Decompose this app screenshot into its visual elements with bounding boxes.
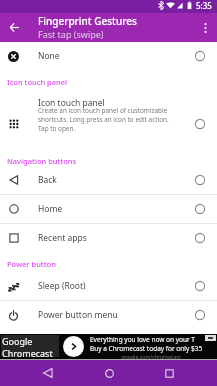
staticText: Home xyxy=(38,203,63,215)
button[interactable]: Recent apps xyxy=(0,224,217,252)
button[interactable]: Icon touch panel xyxy=(0,96,217,152)
button[interactable]: Sleep (Root) xyxy=(0,272,217,300)
button[interactable]: More options xyxy=(193,13,217,42)
staticText: Fingerprint Gestures xyxy=(38,14,137,28)
staticText: Back xyxy=(38,174,57,186)
staticText: Fast tap (swipe) xyxy=(38,28,104,40)
button[interactable]: Back xyxy=(0,166,217,194)
button[interactable]: Power button menu xyxy=(0,301,217,329)
button[interactable]: Navigate up xyxy=(0,13,29,42)
button[interactable]: Recent apps xyxy=(156,360,182,386)
staticText: Google xyxy=(2,335,33,347)
button[interactable]: Home xyxy=(96,360,122,386)
staticText: Sleep (Root) xyxy=(38,280,86,292)
staticText: Icon touch panel xyxy=(7,77,68,87)
staticText: Power button menu xyxy=(38,309,118,321)
button[interactable]: Home xyxy=(0,195,217,223)
staticText: Create an icon touch panel of customizab… xyxy=(38,106,179,133)
staticText: Navigation buttons xyxy=(7,156,77,166)
button[interactable]: Back xyxy=(35,360,61,386)
staticText: Buy a Chromecast today for only $35 xyxy=(90,344,203,353)
staticText: google.com/chromecast xyxy=(90,353,212,359)
staticText: Icon touch panel xyxy=(38,97,105,109)
staticText: 5:35 xyxy=(196,0,212,11)
staticText: Recent apps xyxy=(38,232,87,244)
staticText: None xyxy=(38,50,60,62)
staticText: Everything you love now on your T xyxy=(90,335,195,344)
staticText: Power button xyxy=(7,259,56,269)
staticText: Chromecast xyxy=(2,347,53,359)
button[interactable]: None xyxy=(0,42,217,70)
button[interactable]: Advertisement: Google Chromecast xyxy=(0,334,217,359)
